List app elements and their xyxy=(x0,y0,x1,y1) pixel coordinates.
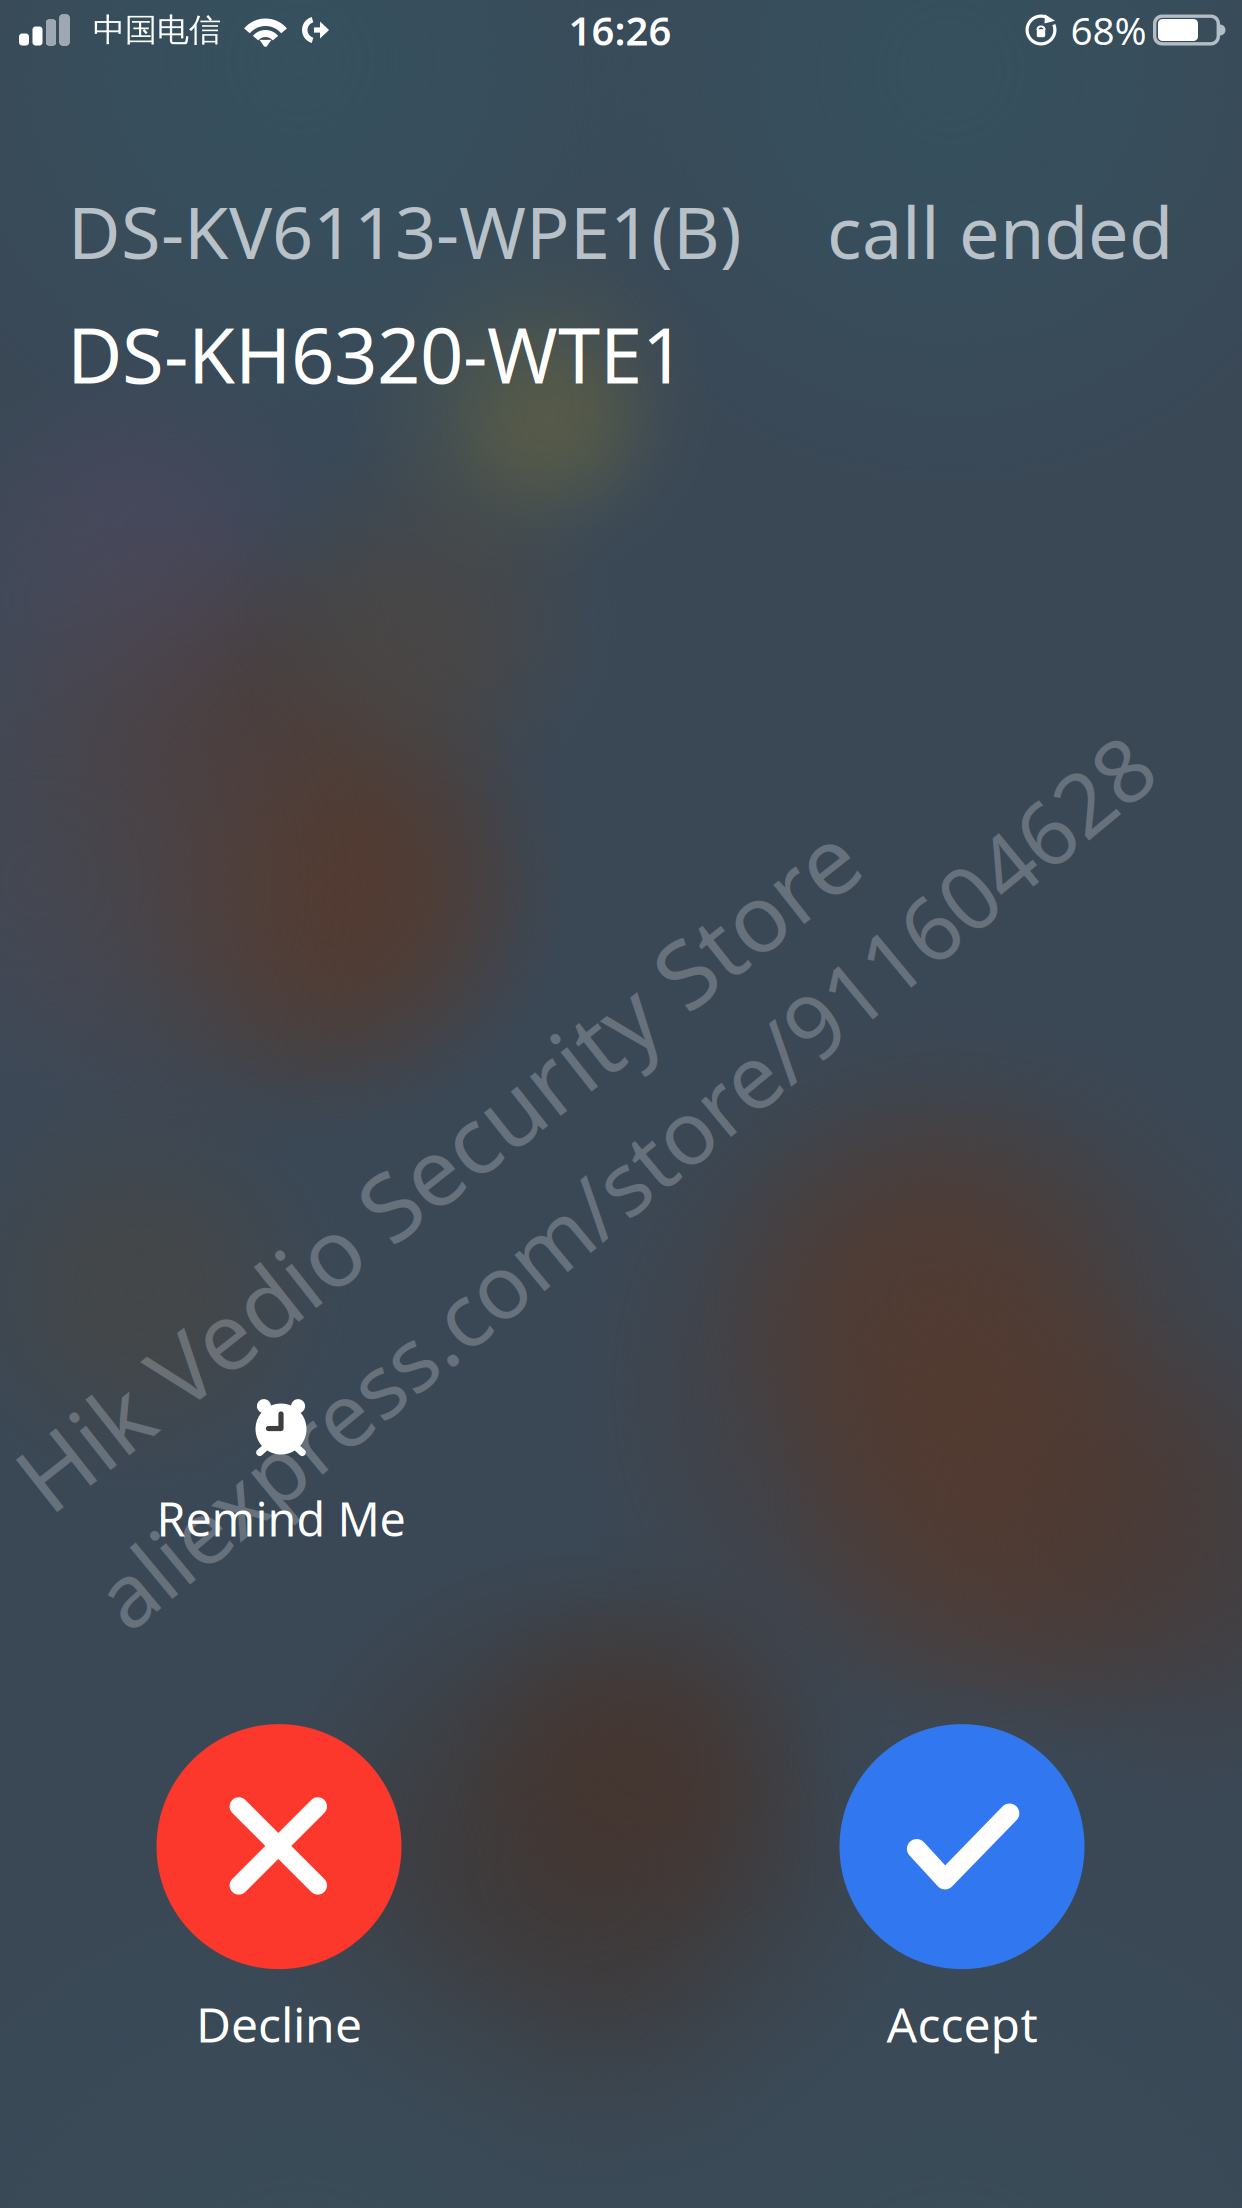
staticText: Accept xyxy=(886,1992,1037,2056)
staticText: Hik Vedio Security Store xyxy=(0,1105,958,1229)
staticText: 16:26 xyxy=(568,3,671,56)
button[interactable]: Accept xyxy=(812,1736,1112,2044)
staticText: 中国电信 xyxy=(93,10,221,50)
button[interactable]: Decline xyxy=(129,1736,429,2044)
staticText: DS-KV6113-WPE1(B) xyxy=(68,183,742,279)
staticText: call ended xyxy=(827,183,1173,279)
staticText: Decline xyxy=(196,1992,362,2056)
staticText: 68% xyxy=(1070,4,1146,56)
button[interactable]: Remind Me xyxy=(131,1404,431,1544)
staticText: DS-KH6320-WTE1 xyxy=(67,303,685,404)
staticText: Remind Me xyxy=(156,1487,405,1549)
staticText: aliexpress.com/store/911604628 xyxy=(0,1123,1242,1239)
